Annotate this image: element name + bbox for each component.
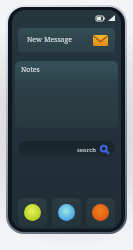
staticText: New Message: [27, 35, 73, 45]
button[interactable]: Phone app: [86, 198, 115, 227]
button[interactable]: Notes: [15, 61, 118, 128]
button[interactable]: New Message: [18, 28, 115, 52]
button[interactable]: Search: [100, 145, 109, 154]
staticText: search: [77, 146, 96, 154]
button[interactable]: Messages app: [52, 198, 81, 227]
staticText: Notes: [21, 65, 40, 75]
button[interactable]: Notes app: [18, 198, 47, 227]
button[interactable]: search: [18, 141, 115, 157]
